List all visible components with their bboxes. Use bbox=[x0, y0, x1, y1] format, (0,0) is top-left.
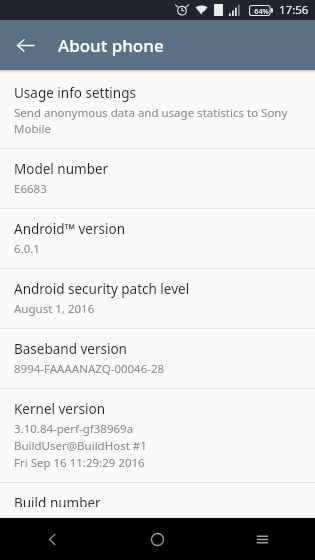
button[interactable]: Android security patch level bbox=[0, 269, 315, 328]
staticText: 17:56 bbox=[279, 2, 309, 18]
button[interactable]: Kernel version bbox=[0, 389, 315, 482]
button[interactable]: Android™ version bbox=[0, 209, 315, 268]
staticText: Android security patch level bbox=[14, 280, 190, 298]
staticText: 6.0.1 bbox=[14, 241, 40, 257]
staticText: 3.10.84-perf-gf38969a bbox=[14, 421, 134, 437]
button[interactable]: Build number bbox=[0, 483, 315, 518]
staticText: Fri Sep 16 11:29:29 2016 bbox=[14, 455, 145, 471]
staticText: August 1, 2016 bbox=[14, 301, 95, 317]
button[interactable]: Recent apps bbox=[210, 518, 315, 560]
staticText: Android™ version bbox=[14, 220, 125, 238]
staticText: BuildUser@BuildHost #1 bbox=[14, 438, 147, 454]
button[interactable]: Back bbox=[0, 518, 105, 560]
staticText: Model number bbox=[14, 160, 109, 178]
button[interactable]: Usage info settings bbox=[0, 73, 315, 148]
staticText: Baseband version bbox=[14, 340, 127, 358]
button[interactable]: Baseband version bbox=[0, 329, 315, 388]
staticText: 8994-FAAAANAZQ-00046-28 bbox=[14, 361, 165, 377]
staticText: 64% bbox=[254, 6, 269, 16]
staticText: Build number bbox=[14, 494, 101, 507]
button[interactable]: Model number bbox=[0, 149, 315, 208]
staticText: About phone bbox=[58, 34, 164, 57]
staticText: Usage info settings bbox=[14, 84, 136, 102]
button[interactable]: Back bbox=[8, 28, 42, 62]
staticText: Kernel version bbox=[14, 400, 106, 418]
staticText: Send anonymous data and usage statistics… bbox=[14, 105, 301, 137]
staticText: E6683 bbox=[14, 181, 47, 197]
button[interactable]: Home bbox=[105, 518, 210, 560]
